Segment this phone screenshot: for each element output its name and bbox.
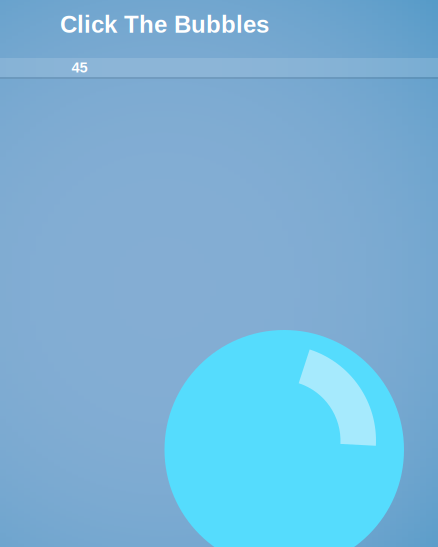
button[interactable]: Pop bubble (0, 0, 438, 547)
staticText: Click The Bubbles (60, 11, 269, 38)
staticText: 45 (71, 59, 87, 76)
